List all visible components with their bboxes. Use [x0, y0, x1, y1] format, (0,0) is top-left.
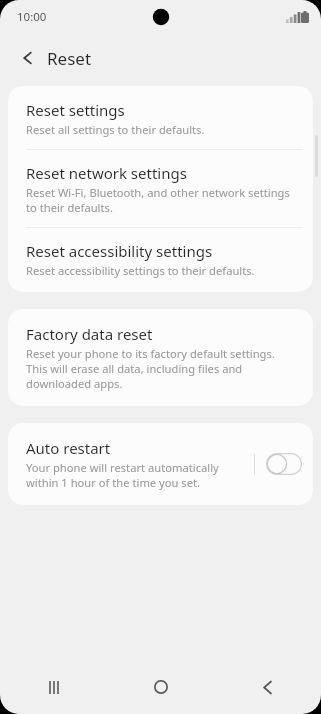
staticText: Reset your phone to its factory default … — [26, 346, 293, 391]
staticText: Reset network settings — [26, 163, 187, 183]
button[interactable]: Home — [107, 660, 214, 714]
button[interactable]: Reset settings — [8, 86, 313, 149]
button[interactable]: Back — [14, 44, 42, 72]
button[interactable]: Recent apps — [0, 660, 107, 714]
staticText: Reset — [47, 47, 92, 70]
button[interactable]: Reset accessibility settings — [8, 228, 313, 292]
button[interactable]: Factory data reset — [8, 309, 313, 406]
staticText: Reset accessibility settings — [26, 241, 213, 261]
staticText: Factory data reset — [26, 324, 153, 344]
button[interactable]: Auto restart toggle — [266, 453, 302, 475]
button[interactable]: Back — [214, 660, 321, 714]
button[interactable]: Reset network settings — [8, 150, 313, 227]
staticText: Reset settings — [26, 100, 125, 120]
staticText: Reset all settings to their defaults. — [26, 122, 205, 137]
staticText: Auto restart — [26, 438, 111, 458]
button[interactable]: Auto restart — [8, 423, 254, 505]
staticText: Reset accessibility settings to their de… — [26, 263, 255, 278]
staticText: 10:00 — [17, 9, 47, 25]
staticText: Your phone will restart automatically wi… — [26, 460, 246, 490]
staticText: Reset Wi-Fi, Bluetooth, and other networ… — [26, 185, 291, 215]
